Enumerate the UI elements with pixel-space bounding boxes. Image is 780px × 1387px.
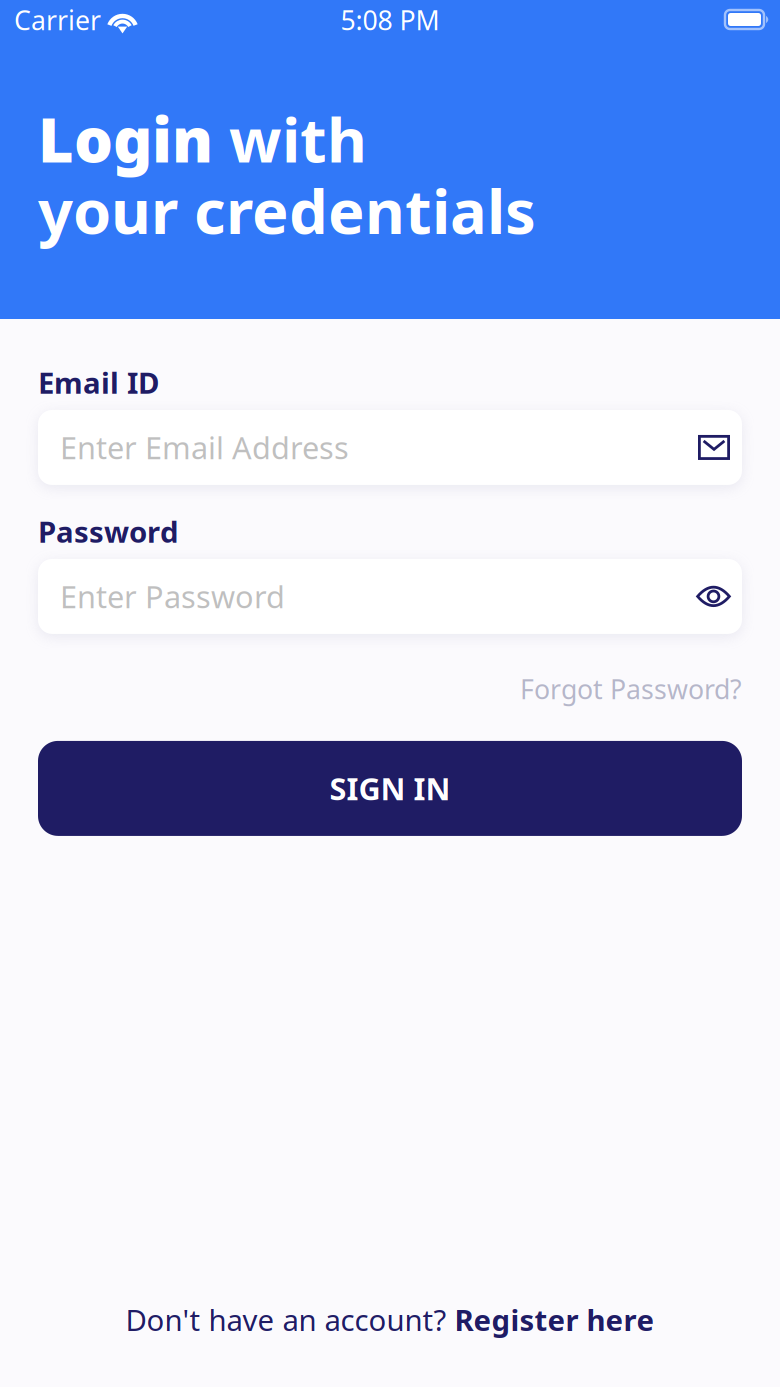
button[interactable]: Forgot Password? — [38, 673, 742, 705]
staticText: Don't have an account? — [125, 1300, 454, 1339]
staticText: SIGN IN — [329, 768, 450, 809]
staticText: 5:08 PM — [340, 2, 439, 38]
staticText: Forgot Password? — [520, 671, 742, 707]
staticText: Password — [38, 512, 179, 551]
staticText: Carrier — [14, 2, 101, 38]
button[interactable]: Don't have an account? — [125, 1300, 654, 1339]
staticText: your credentials — [38, 169, 536, 251]
button[interactable]: SIGN IN — [38, 741, 742, 836]
staticText: Enter Email Address — [60, 427, 349, 468]
staticText: Register here — [454, 1300, 654, 1339]
staticText: with — [213, 98, 367, 179]
staticText: Login — [38, 98, 213, 179]
staticText: Enter Password — [60, 576, 285, 617]
staticText: Email ID — [38, 363, 159, 402]
